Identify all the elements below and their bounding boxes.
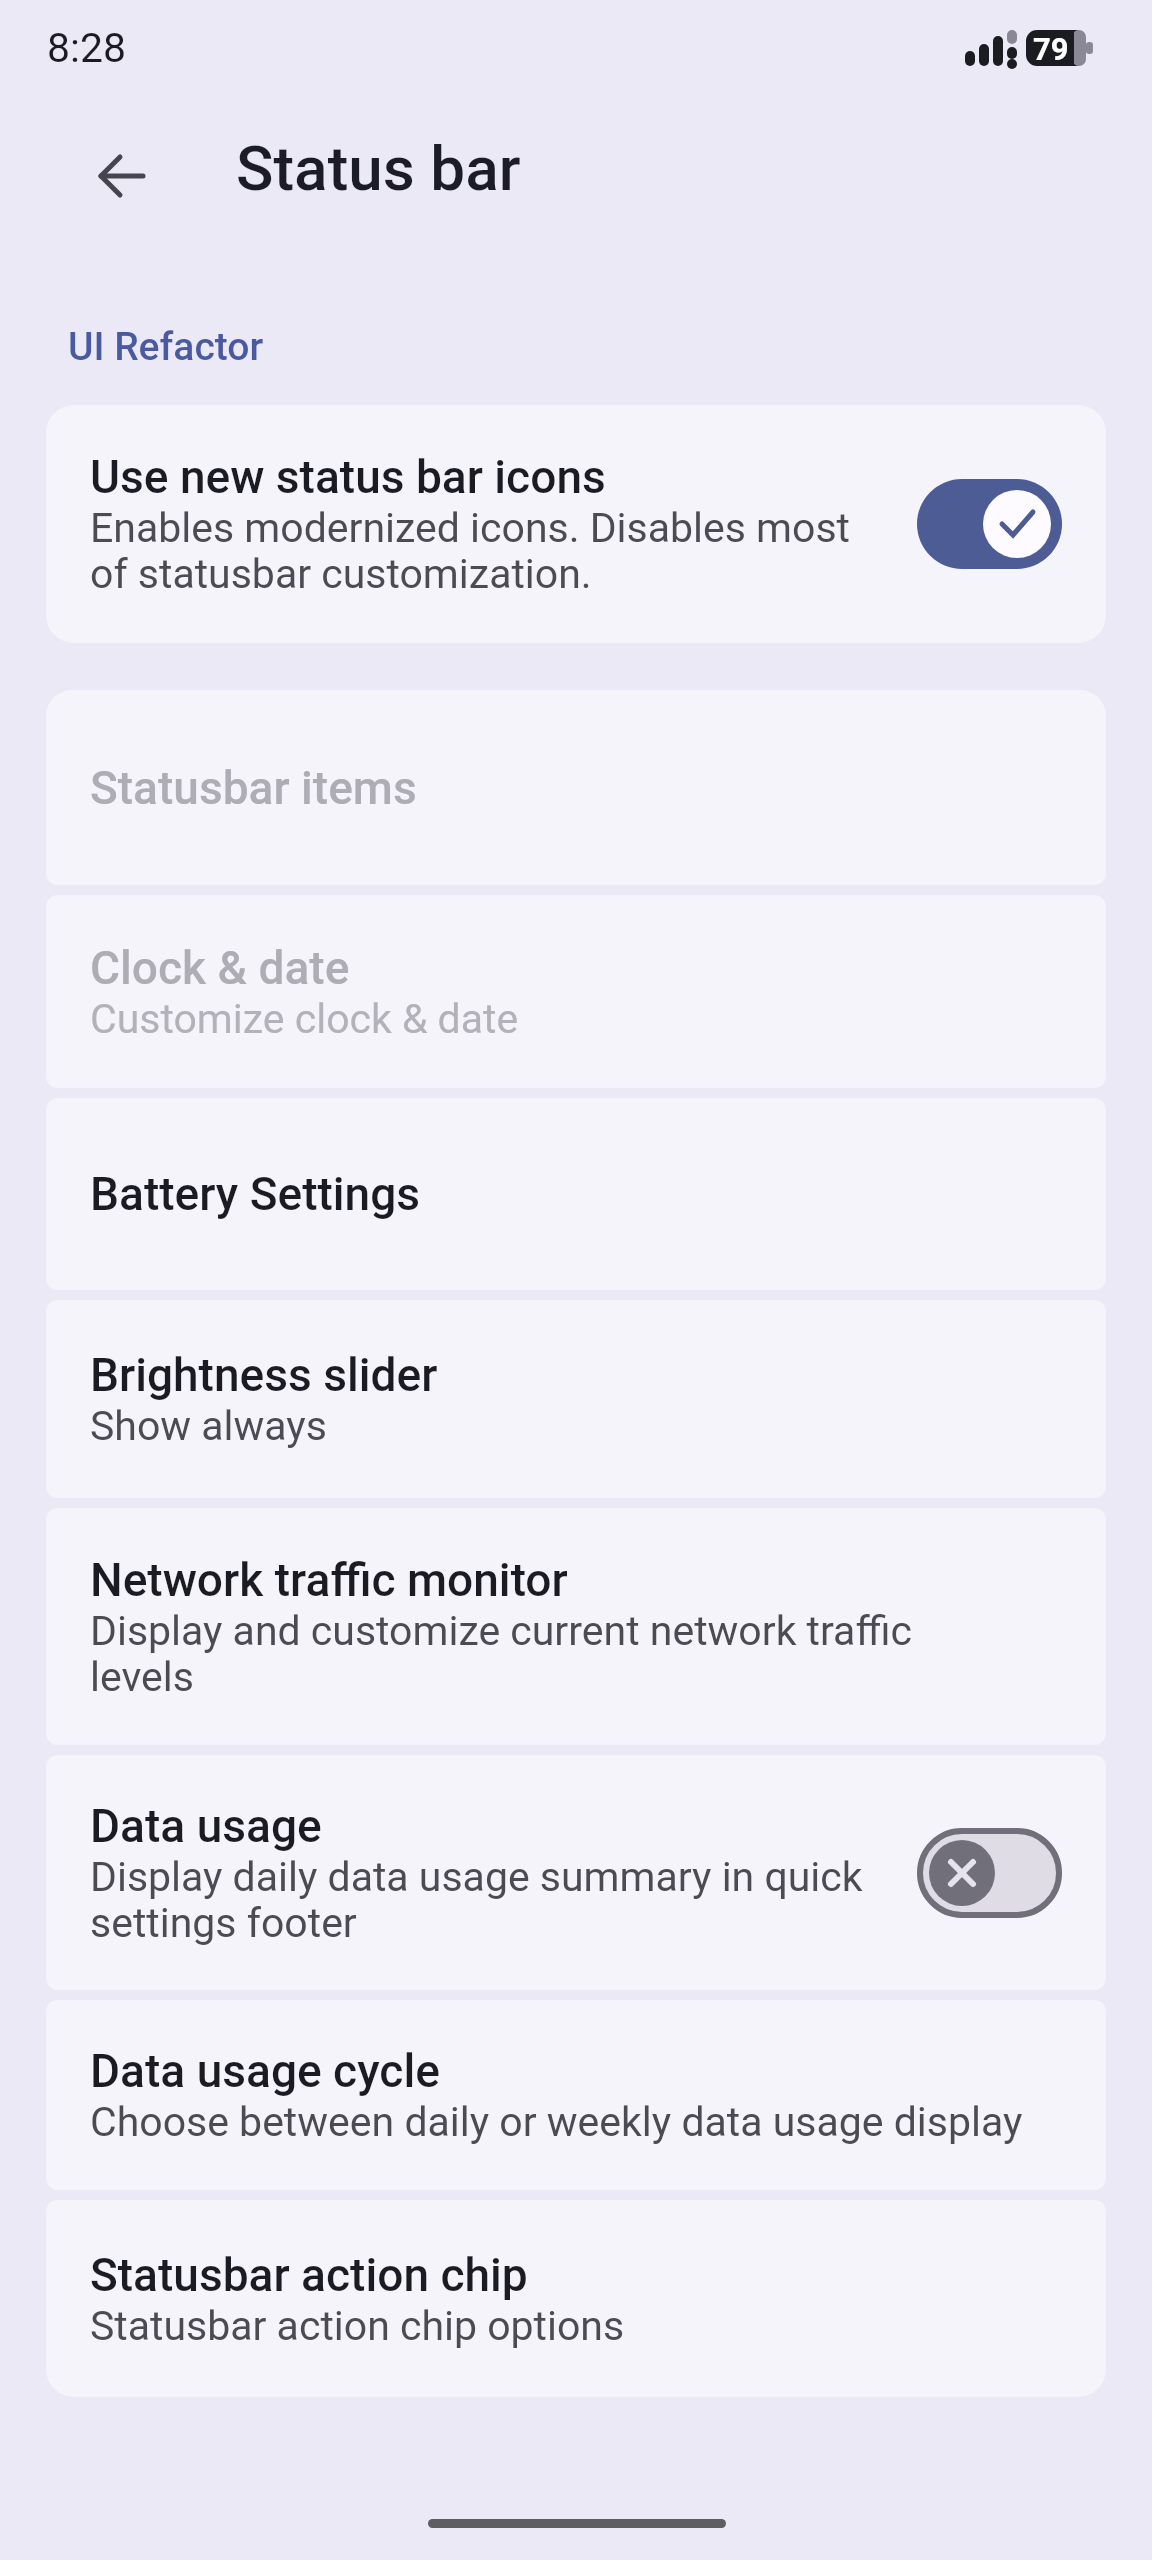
staticText: Choose between daily or weekly data usag… bbox=[90, 2098, 1023, 2146]
staticText: Data usage bbox=[90, 1799, 322, 1853]
staticText: Brightness slider bbox=[90, 1348, 438, 1402]
button[interactable]: Battery Settings bbox=[46, 1098, 1106, 1290]
button[interactable]: Use new status bar icons bbox=[46, 405, 1106, 643]
button[interactable]: Statusbar items bbox=[46, 690, 1106, 885]
staticText: Enables modernized icons. Disables most … bbox=[90, 504, 850, 598]
button[interactable]: Data usage cycle bbox=[46, 2000, 1106, 2190]
staticText: Display daily data usage summary in quic… bbox=[90, 1853, 863, 1947]
button[interactable] bbox=[80, 134, 164, 218]
staticText: Show always bbox=[90, 1402, 327, 1450]
staticText: Statusbar action chip bbox=[90, 2248, 528, 2302]
staticText: Statusbar items bbox=[90, 761, 417, 815]
staticText: UI Refactor bbox=[68, 324, 264, 370]
button[interactable] bbox=[917, 479, 1062, 569]
staticText: Clock & date bbox=[90, 941, 350, 995]
button[interactable] bbox=[917, 1828, 1062, 1918]
staticText: Battery Settings bbox=[90, 1167, 420, 1221]
button[interactable]: Network traffic monitor bbox=[46, 1508, 1106, 1745]
staticText: Statusbar action chip options bbox=[90, 2302, 625, 2350]
staticText: Use new status bar icons bbox=[90, 450, 606, 504]
staticText: Data usage cycle bbox=[90, 2044, 440, 2098]
staticText: Customize clock & date bbox=[90, 995, 519, 1043]
button[interactable]: Statusbar action chip bbox=[46, 2200, 1106, 2397]
button[interactable]: Clock & date bbox=[46, 895, 1106, 1088]
staticText: Network traffic monitor bbox=[90, 1553, 568, 1607]
button[interactable]: Brightness slider bbox=[46, 1300, 1106, 1498]
button[interactable]: Data usage bbox=[46, 1755, 1106, 1990]
staticText: 8:28 bbox=[47, 24, 127, 72]
staticText: Status bar bbox=[236, 132, 521, 205]
staticText: 79 bbox=[1033, 31, 1069, 67]
staticText: Display and customize current network tr… bbox=[90, 1607, 912, 1701]
